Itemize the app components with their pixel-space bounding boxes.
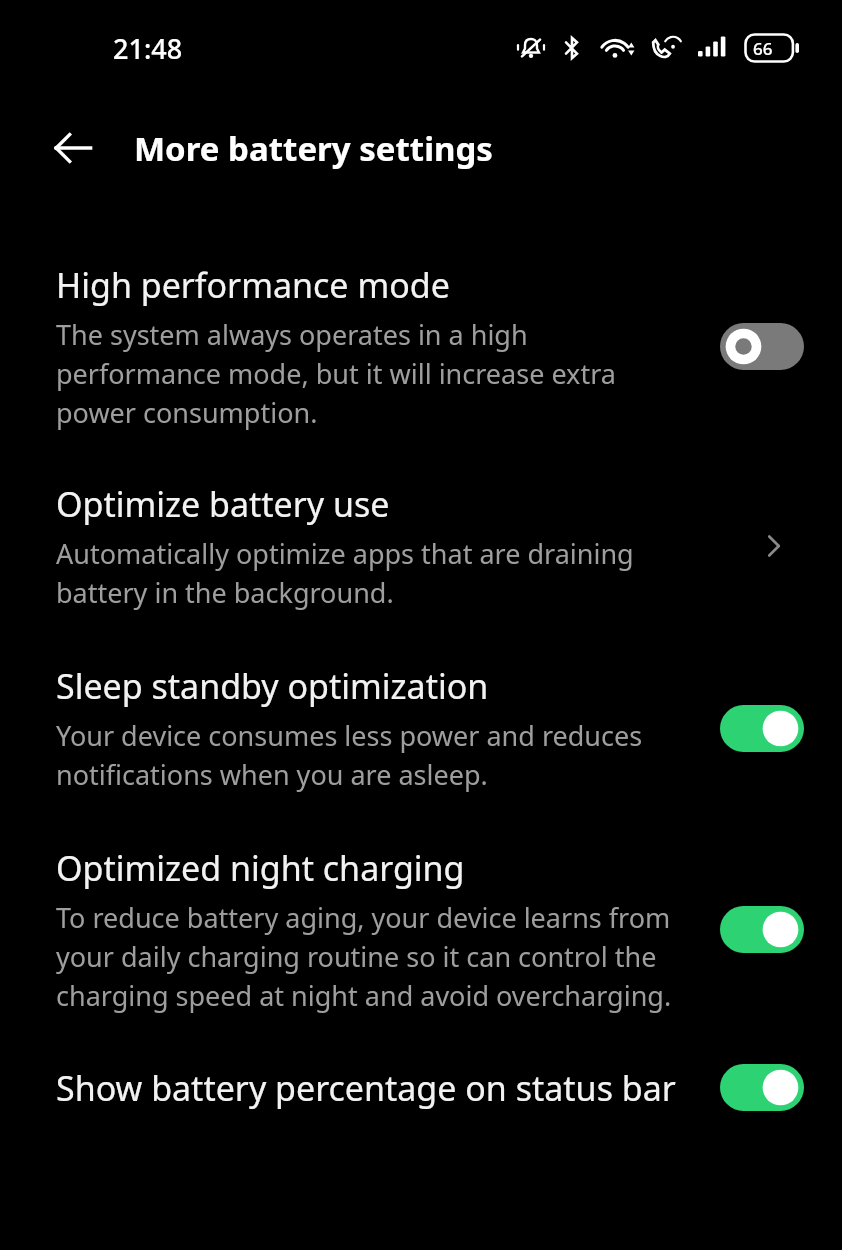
staticText: Your device consumes less power and redu… — [56, 717, 696, 793]
button[interactable]: Optimize battery use — [0, 481, 842, 611]
staticText: The system always operates in a high per… — [56, 316, 696, 431]
button[interactable]: Sleep standby optimization — [0, 663, 842, 793]
button[interactable]: High performance mode — [0, 262, 842, 431]
button[interactable]: Optimized night charging — [0, 845, 842, 1014]
staticText: Optimize battery use — [56, 481, 390, 527]
staticText: 21:48 — [113, 30, 183, 67]
staticText: Sleep standby optimization — [56, 663, 489, 709]
staticText: To reduce battery aging, your device lea… — [56, 899, 696, 1014]
staticText: Optimized night charging — [56, 845, 465, 891]
staticText: Automatically optimize apps that are dra… — [56, 535, 720, 611]
button[interactable]: Toggle on — [720, 906, 804, 953]
button[interactable]: Toggle off — [720, 323, 804, 370]
button[interactable]: Back — [36, 111, 110, 185]
button[interactable]: Toggle on — [720, 1064, 804, 1111]
staticText: Show battery percentage on status bar — [56, 1065, 676, 1111]
staticText: More battery settings — [134, 126, 493, 171]
staticText: 66 — [753, 37, 773, 60]
button[interactable]: Toggle on — [720, 705, 804, 752]
button[interactable]: Show battery percentage on status bar — [0, 1064, 842, 1111]
button[interactable]: Open — [744, 516, 804, 576]
staticText: High performance mode — [56, 262, 450, 308]
